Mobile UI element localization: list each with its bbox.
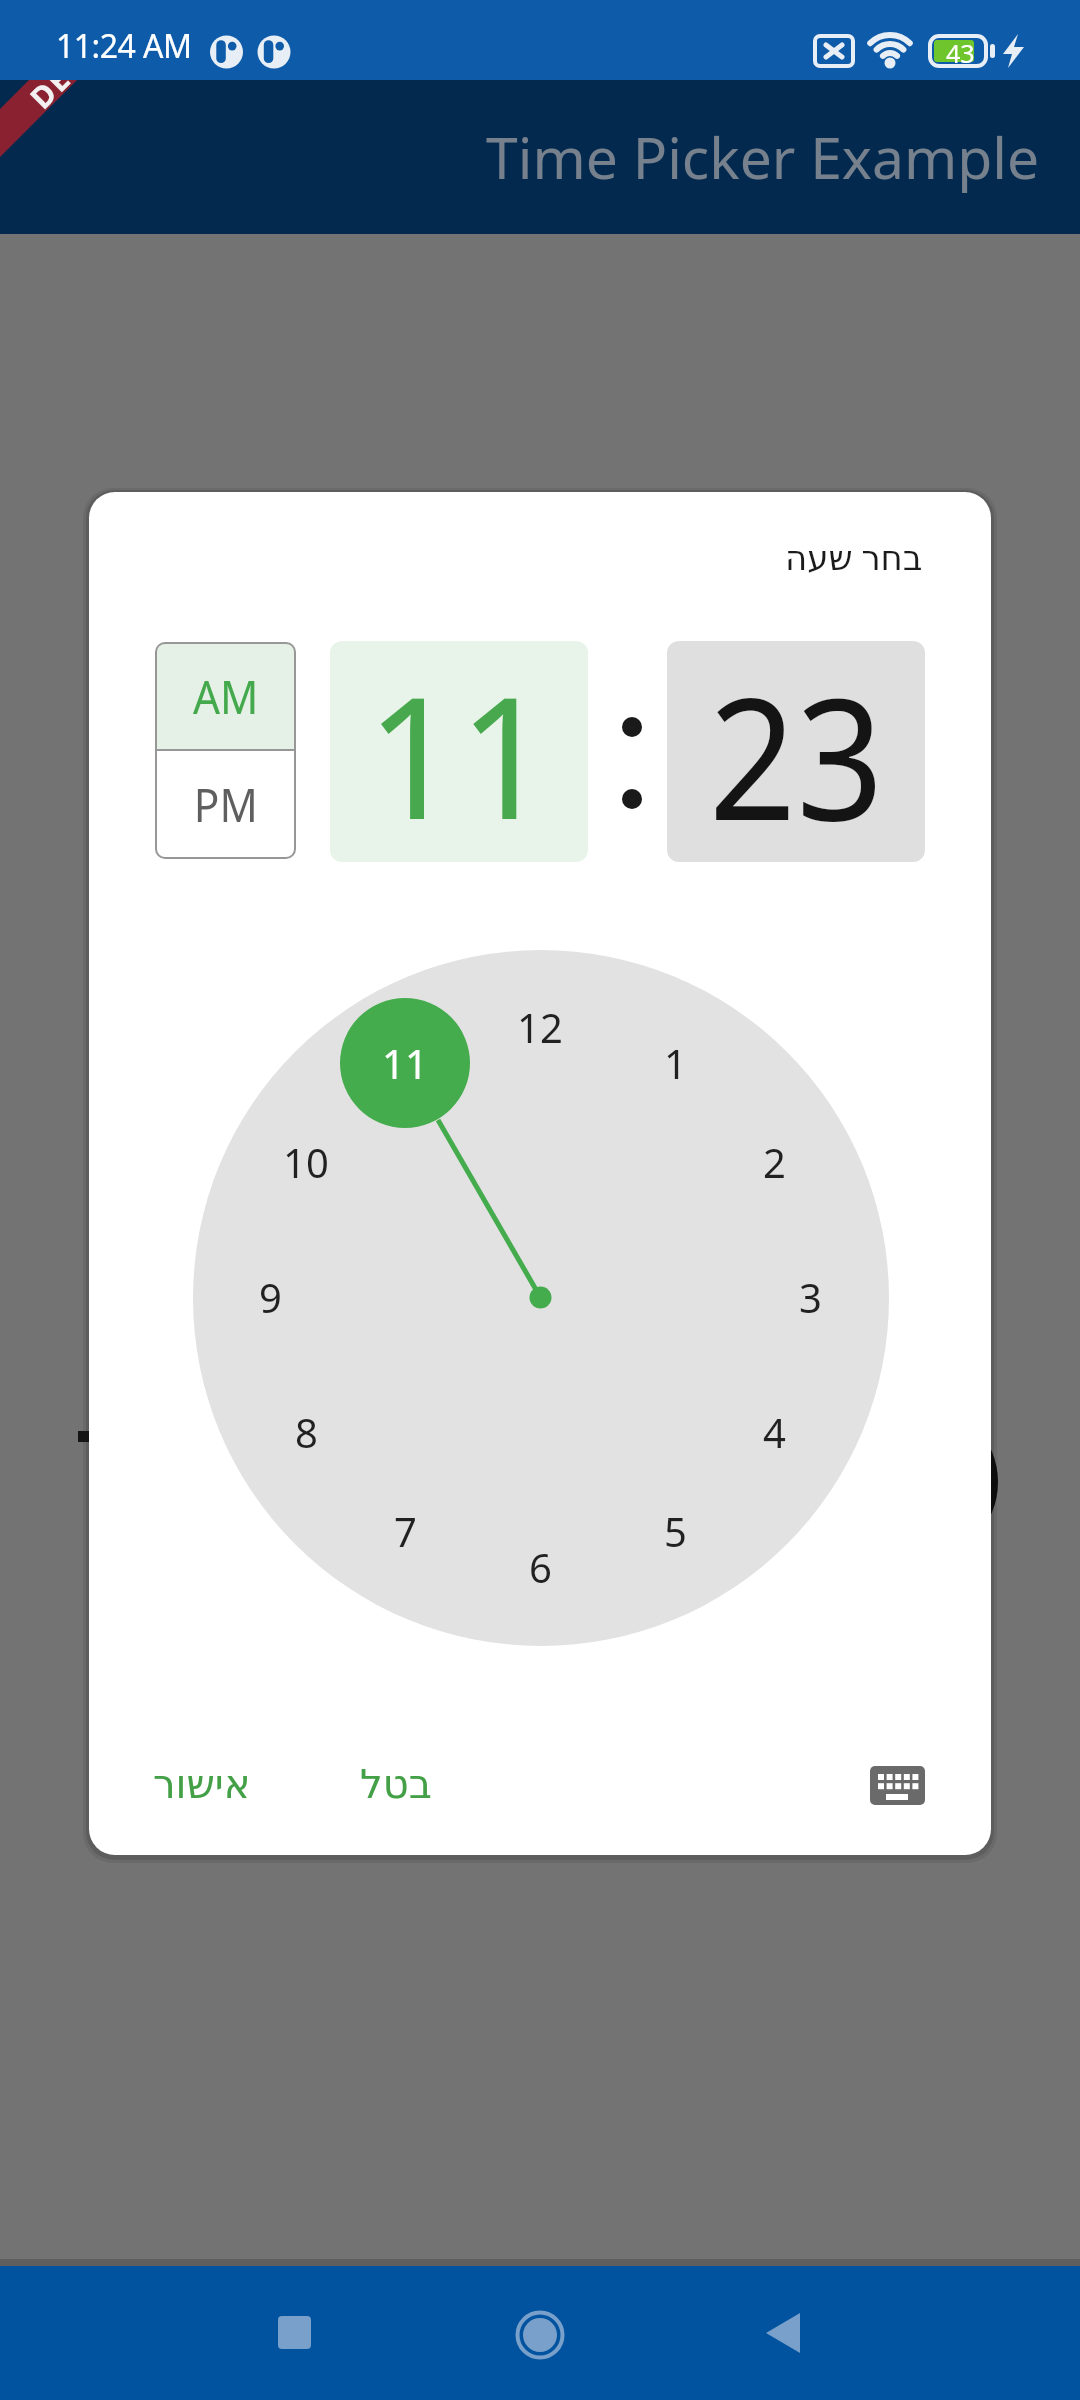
button[interactable] <box>360 2266 720 2400</box>
staticText: 12 <box>517 1000 563 1054</box>
staticText: 9 <box>259 1270 282 1324</box>
staticText: AM <box>193 665 259 728</box>
button[interactable]: 1 <box>635 1023 715 1103</box>
button[interactable]: 4 <box>734 1392 814 1472</box>
staticText: 23 <box>709 641 884 861</box>
staticText: 3 <box>799 1270 822 1324</box>
staticText: 5 <box>664 1504 687 1558</box>
staticText: 43 <box>946 36 975 66</box>
button[interactable] <box>720 2266 1080 2400</box>
button[interactable]: בטל <box>336 1744 456 1824</box>
button[interactable]: 2 <box>734 1122 814 1202</box>
button[interactable]: 12 <box>500 987 580 1067</box>
staticText: 7 <box>394 1504 417 1558</box>
staticText: אישור <box>153 1761 251 1808</box>
staticText: בטל <box>360 1761 432 1808</box>
staticText: 6 <box>529 1540 552 1594</box>
staticText: בחר שעה <box>785 534 923 580</box>
button[interactable]: AM <box>157 644 294 749</box>
staticText: 1 <box>664 1036 687 1090</box>
staticText: 11:24 AM <box>56 24 192 68</box>
button[interactable]: 9 <box>230 1257 310 1337</box>
staticText: 8 <box>295 1405 318 1459</box>
button[interactable]: 5 <box>635 1491 715 1571</box>
staticText: DEBUG <box>20 80 125 112</box>
button[interactable]: PM <box>157 751 294 857</box>
staticText: 11 <box>367 641 552 860</box>
button[interactable]: 3 <box>770 1257 850 1337</box>
button[interactable] <box>0 2266 360 2400</box>
staticText: 2 <box>763 1135 786 1189</box>
button[interactable]: 7 <box>365 1491 445 1571</box>
staticText: 10 <box>283 1135 329 1189</box>
button[interactable]: 11 <box>340 998 470 1128</box>
staticText: 4 <box>763 1405 786 1459</box>
button[interactable]: 10 <box>266 1122 346 1202</box>
button[interactable]: אישור <box>142 1744 262 1824</box>
staticText: Time Picker Example <box>486 118 1040 196</box>
staticText: PM <box>194 773 258 836</box>
button[interactable]: 6 <box>500 1527 580 1607</box>
button[interactable]: 23 <box>667 641 925 862</box>
staticText: 11 <box>382 1036 428 1090</box>
button[interactable]: 11 <box>330 641 588 862</box>
button[interactable] <box>859 1760 931 1816</box>
button[interactable]: 8 <box>266 1392 346 1472</box>
